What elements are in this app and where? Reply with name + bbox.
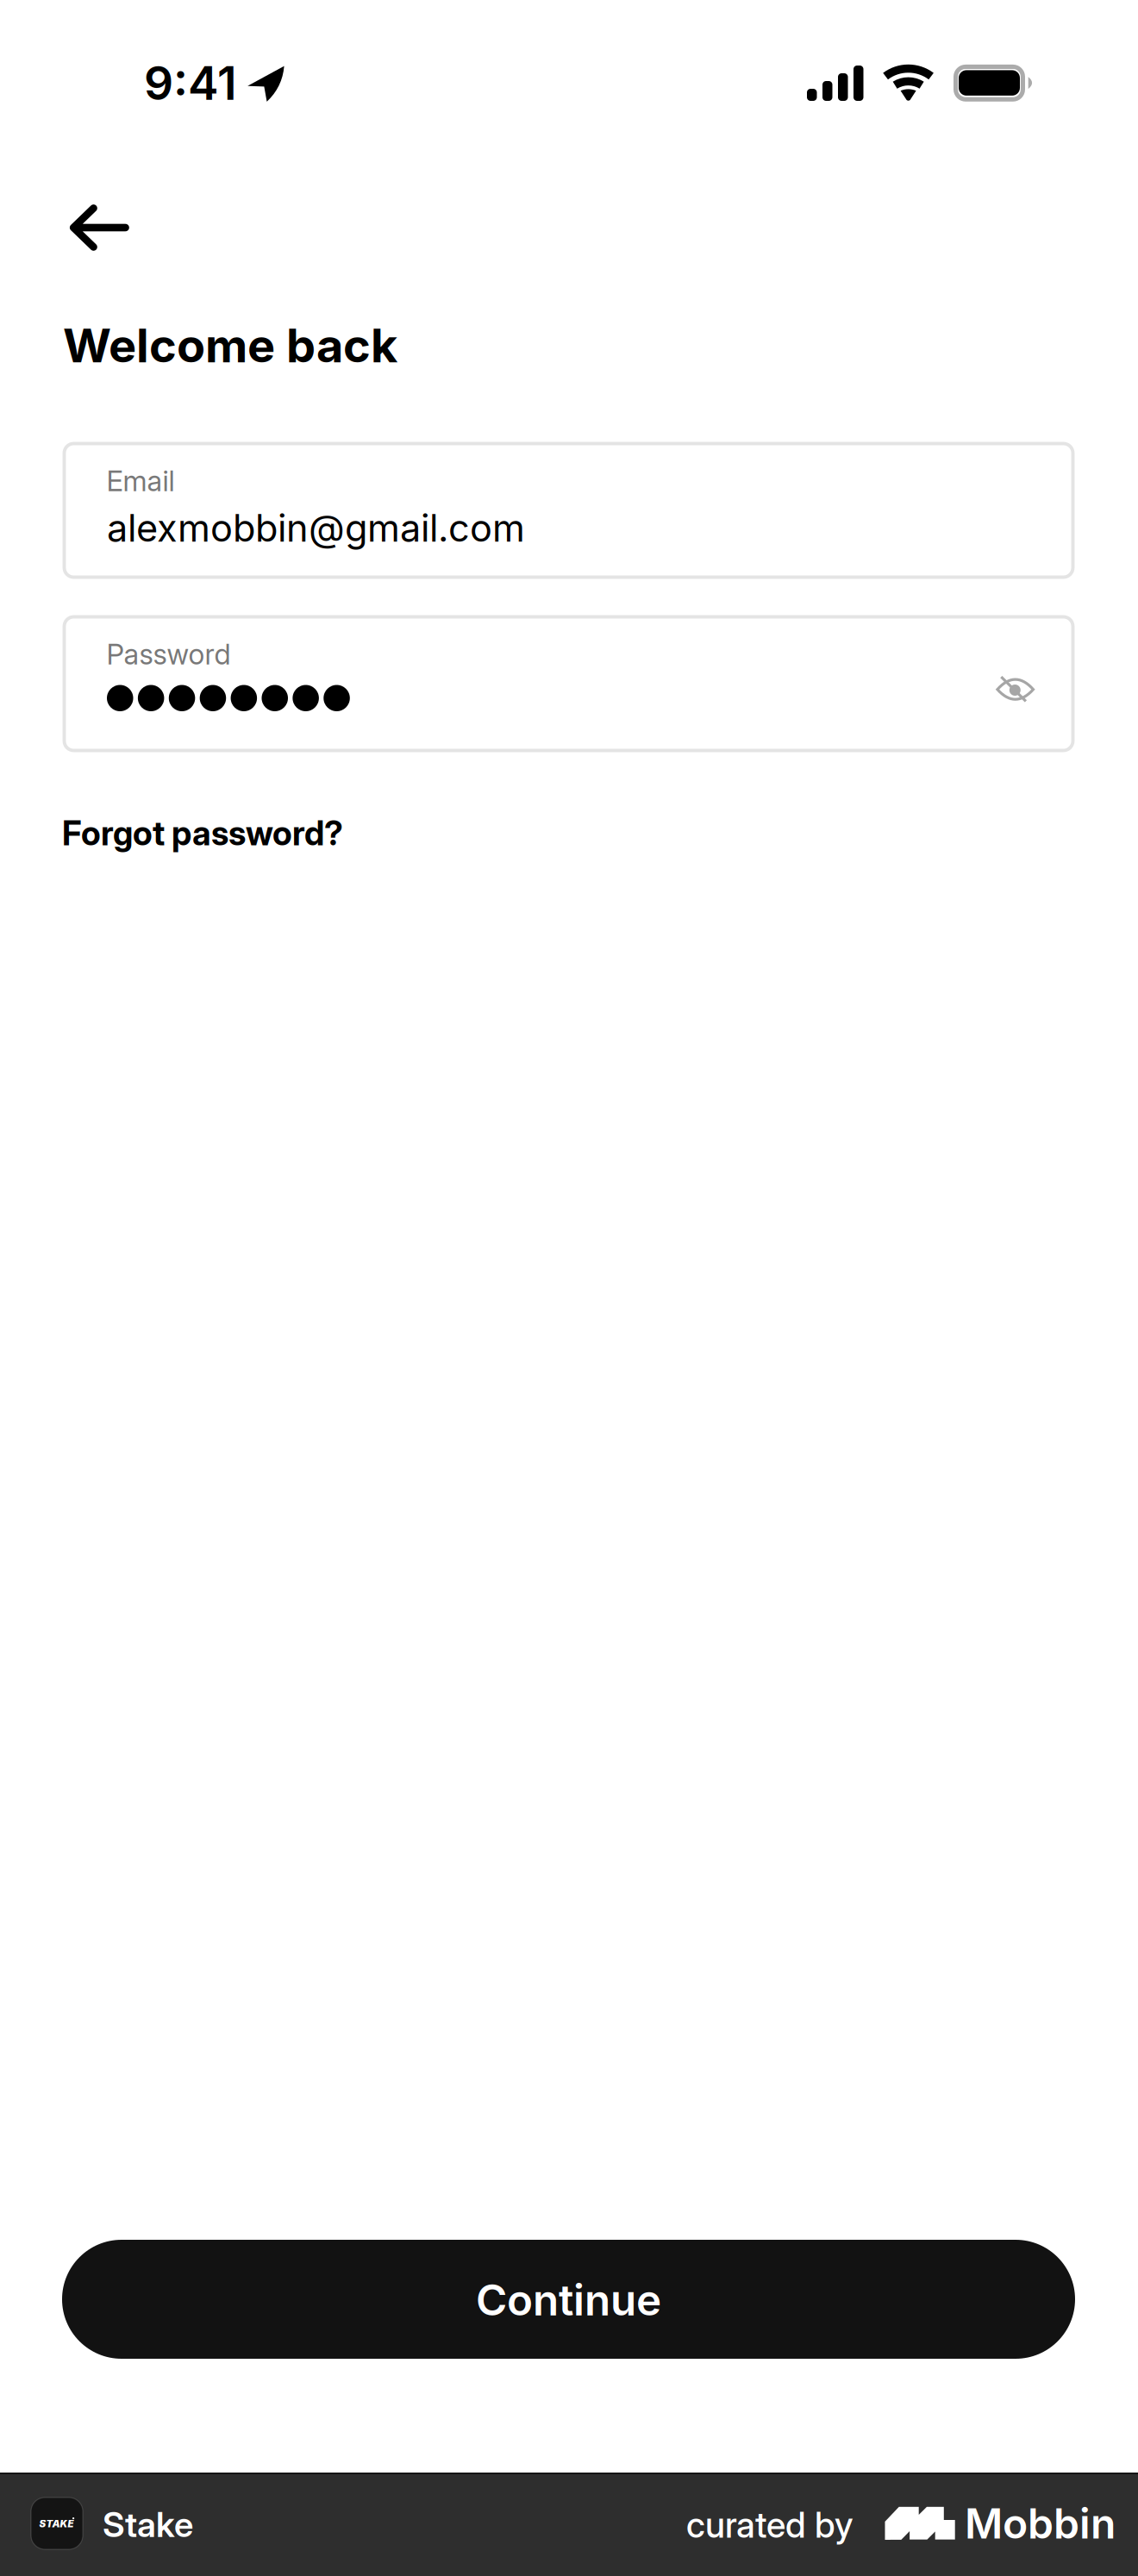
staticText: Mobbin — [965, 2498, 1116, 2548]
button[interactable]: Continue — [62, 2240, 1075, 2359]
staticText: Welcome back — [63, 317, 397, 374]
button[interactable]: Email — [64, 444, 1073, 577]
staticText: Forgot password? — [62, 813, 343, 853]
button[interactable]: Show password — [981, 656, 1050, 723]
staticText: STAKE — [39, 2518, 74, 2530]
staticText: Stake — [103, 2504, 193, 2545]
staticText: Password — [106, 637, 231, 671]
staticText: 9:41 — [144, 55, 237, 111]
staticText: alexmobbin@gmail.com — [107, 506, 525, 551]
staticText: Continue — [476, 2274, 661, 2326]
staticText: curated by — [686, 2504, 853, 2546]
button[interactable]: Password — [64, 617, 1073, 750]
button[interactable]: Forgot password? — [62, 813, 343, 853]
staticText: Email — [106, 464, 175, 498]
button[interactable]: Back — [43, 176, 155, 279]
